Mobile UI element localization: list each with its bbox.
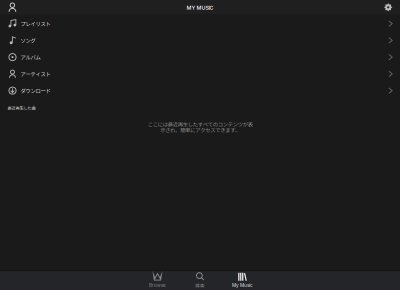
staticText: Browse (149, 283, 166, 288)
button[interactable]: My Music (221, 271, 264, 290)
button[interactable]: 検索 (179, 271, 221, 290)
staticText: My Music (232, 283, 253, 288)
staticText: ソング (20, 36, 35, 44)
button[interactable]: アーティスト (0, 66, 400, 83)
staticText: アーティスト (20, 70, 50, 78)
button[interactable]: Settings (378, 0, 398, 15)
staticText: ダウンロード (20, 87, 50, 94)
button[interactable]: ダウンロード (0, 82, 400, 99)
button[interactable]: アルバム (0, 49, 400, 66)
staticText: 検索 (195, 282, 205, 289)
staticText: 最近再生した曲 (7, 105, 35, 111)
staticText: アルバム (20, 53, 40, 61)
button[interactable]: プレイリスト (0, 15, 400, 32)
button[interactable]: Account (2, 0, 22, 15)
staticText: ここには最近再生したすべてのコンテンツが表示され、簡単にアクセスできます。 (147, 120, 252, 134)
staticText: MY MUSIC (186, 5, 213, 11)
staticText: プレイリスト (20, 20, 50, 27)
button[interactable]: Browse (136, 271, 179, 290)
button[interactable]: ソング (0, 32, 400, 49)
